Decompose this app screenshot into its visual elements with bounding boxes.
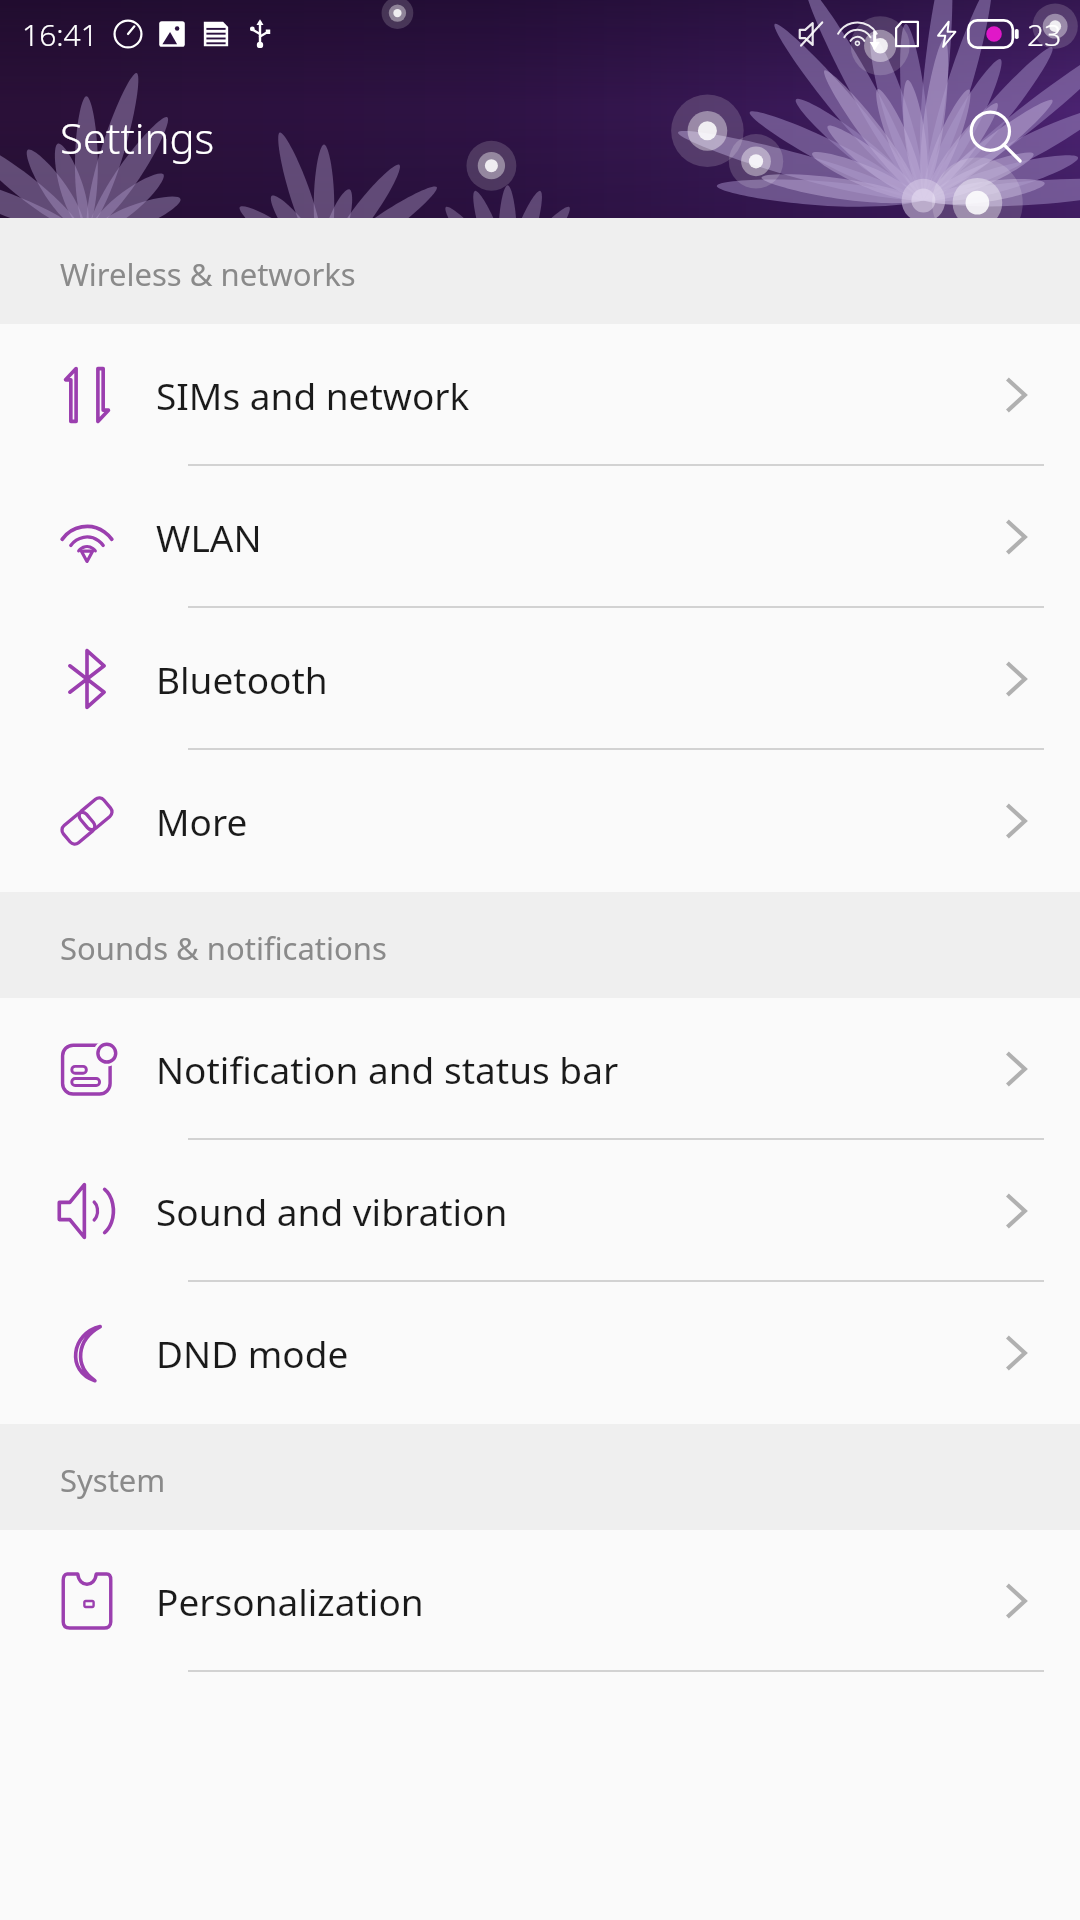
staticText: DND mode [156, 1328, 349, 1378]
staticText: Sounds & notifications [60, 927, 387, 969]
staticText: System [60, 1459, 166, 1501]
staticText: Wireless & networks [60, 253, 356, 295]
button[interactable]: More [0, 750, 1080, 892]
staticText: Notification and status bar [156, 1044, 619, 1094]
staticText: Personalization [156, 1576, 424, 1626]
staticText: 23 [1027, 14, 1062, 55]
staticText: Settings [60, 109, 215, 166]
staticText: Sound and vibration [156, 1186, 508, 1236]
staticText: WLAN [156, 512, 262, 562]
button[interactable]: DND mode [0, 1282, 1080, 1424]
button[interactable]: Notification and status bar [0, 998, 1080, 1140]
staticText: 16:41 [22, 14, 98, 55]
button[interactable]: Personalization [0, 1530, 1080, 1672]
button[interactable]: Bluetooth [0, 608, 1080, 750]
staticText: SIMs and network [156, 370, 470, 420]
button[interactable]: SIMs and network [0, 324, 1080, 466]
button[interactable]: WLAN [0, 466, 1080, 608]
staticText: More [156, 796, 248, 846]
button[interactable]: Sound and vibration [0, 1140, 1080, 1282]
staticText: Bluetooth [156, 654, 328, 704]
button[interactable]: Search [954, 96, 1036, 178]
